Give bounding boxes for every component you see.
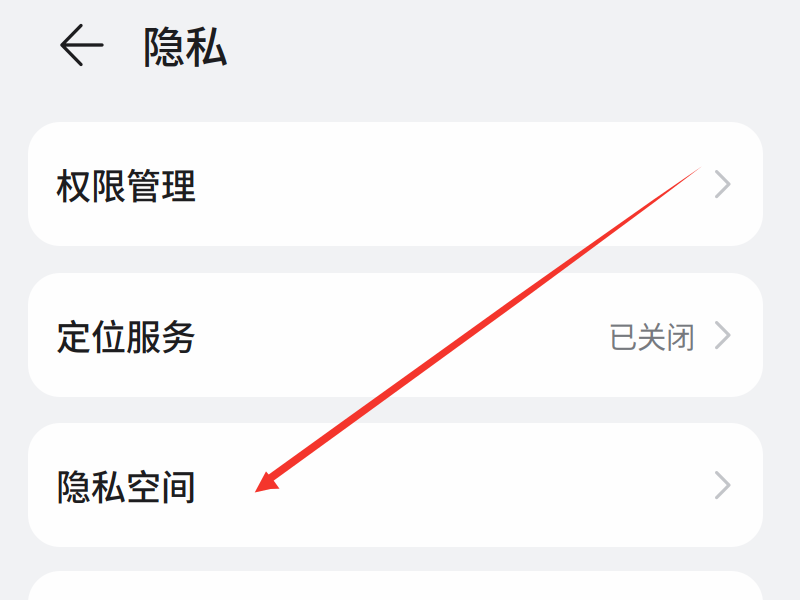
staticText: 权限管理 — [56, 159, 196, 209]
staticText: 隐私空间 — [56, 460, 196, 510]
button[interactable]: 权限管理 — [28, 122, 763, 246]
staticText: 已关闭 — [608, 314, 695, 356]
button[interactable]: 隐私空间 — [28, 423, 763, 547]
button[interactable]: 定位服务 — [28, 273, 763, 397]
staticText: 隐私 — [142, 13, 228, 75]
staticText: 定位服务 — [56, 310, 196, 360]
button[interactable]: 返回 — [51, 13, 115, 77]
